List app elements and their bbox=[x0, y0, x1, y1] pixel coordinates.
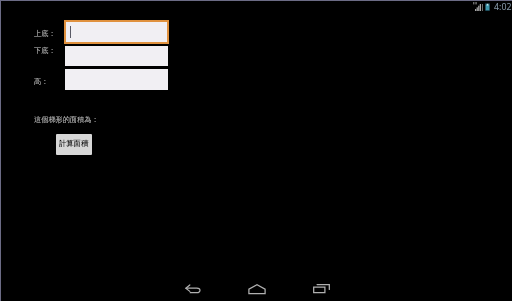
button[interactable]: Back bbox=[172, 276, 214, 301]
button[interactable]: Recent apps bbox=[300, 276, 342, 301]
staticText: 上底： bbox=[34, 29, 56, 38]
staticText: 高： bbox=[34, 77, 49, 86]
staticText: 這個梯形的面積為： bbox=[34, 115, 99, 124]
staticText: 下底： bbox=[34, 46, 56, 55]
button[interactable]: Home bbox=[236, 276, 278, 301]
staticText: 4:02 bbox=[494, 1, 512, 13]
button[interactable]: 上底 input bbox=[64, 20, 169, 44]
button[interactable]: 計算面積 bbox=[56, 134, 92, 155]
staticText: 計算面積 bbox=[59, 139, 89, 148]
